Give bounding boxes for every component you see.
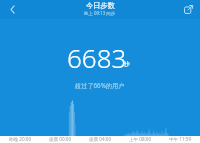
staticText: 凌晨 04:00 — [80, 136, 120, 142]
staticText: 凌晨 00:00 — [40, 136, 80, 142]
staticText: 超过了66%的用户 — [75, 81, 125, 89]
staticText: 昨晚 20:00 — [0, 136, 40, 142]
button[interactable]: Share — [176, 0, 200, 19]
button[interactable]: Back — [0, 0, 24, 19]
staticText: 上午 08:00 — [120, 136, 160, 142]
staticText: 6683 — [67, 40, 127, 75]
staticText: 今日步数 — [86, 1, 115, 10]
staticText: 步 — [124, 60, 130, 68]
staticText: 中午 11:59 — [160, 136, 200, 142]
staticText: 晚上 09:13 同步 — [84, 10, 116, 16]
